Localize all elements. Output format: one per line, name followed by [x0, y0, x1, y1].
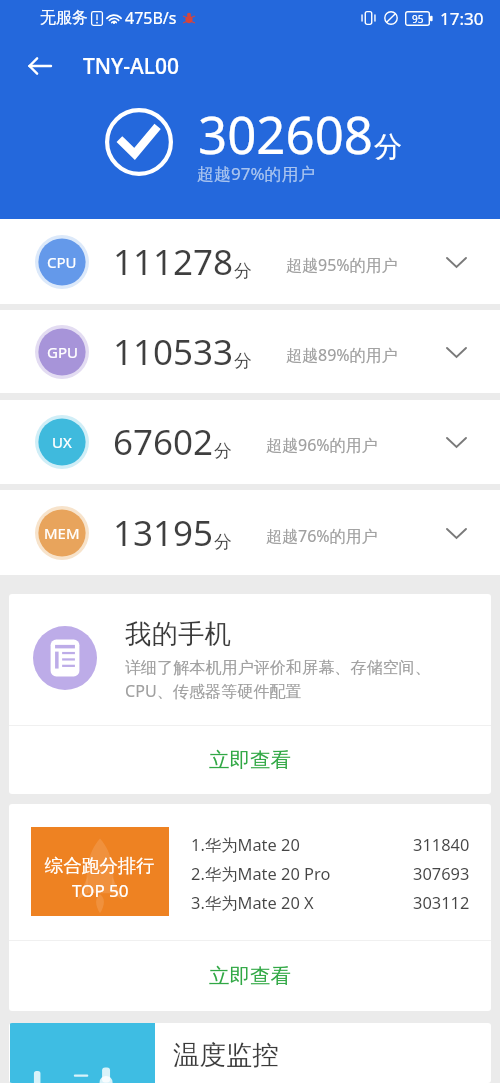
button[interactable]: Expand	[430, 416, 482, 468]
staticText: CPU、传感器等硬件配置	[125, 680, 302, 702]
button[interactable]: 我的手机	[9, 594, 491, 725]
staticText: 分	[214, 531, 232, 554]
staticText: 我的手机	[125, 617, 231, 650]
staticText: 超越96%的用户	[266, 434, 378, 456]
staticText: 分	[374, 129, 402, 164]
staticText: 303112	[413, 891, 470, 913]
staticText: 2.华为Mate 20 Pro	[191, 862, 331, 884]
button[interactable]: Expand	[430, 326, 482, 378]
staticText: TOP 50	[72, 879, 129, 902]
staticText: 分	[214, 440, 232, 463]
staticText: MEM	[44, 523, 80, 543]
staticText: 分	[234, 260, 252, 283]
staticText: UX	[52, 432, 72, 452]
staticText: 超越89%的用户	[286, 344, 398, 366]
staticText: 67602	[113, 418, 214, 466]
staticText: 超越76%的用户	[266, 525, 378, 547]
staticText: TNY-AL00	[83, 52, 180, 81]
staticText: GPU	[47, 342, 78, 362]
button[interactable]: Expand	[430, 236, 482, 288]
staticText: 立即查看	[209, 747, 291, 773]
staticText: 综合跑分排行	[45, 854, 155, 877]
staticText: 无服务	[40, 8, 88, 28]
staticText: 475B/s	[125, 7, 177, 29]
staticText: 110533	[113, 328, 234, 376]
staticText: 1.华为Mate 20	[191, 833, 300, 855]
button[interactable]: 立即查看	[9, 941, 491, 1011]
button[interactable]: CPU	[0, 219, 500, 304]
staticText: 17:30	[440, 7, 484, 30]
staticText: 95	[412, 12, 424, 26]
staticText: 超越95%的用户	[286, 254, 398, 276]
staticText: 立即查看	[209, 963, 291, 989]
button[interactable]: UX	[0, 400, 500, 484]
staticText: 分	[234, 350, 252, 373]
staticText: 温度监控	[173, 1038, 279, 1071]
staticText: 详细了解本机用户评价和屏幕、存储空间、	[125, 657, 431, 677]
staticText: 13195	[113, 509, 214, 557]
staticText: 111278	[113, 238, 234, 286]
staticText: 超越97%的用户	[197, 162, 316, 185]
staticText: 3.华为Mate 20 X	[191, 891, 314, 913]
button[interactable]: 综合跑分排行	[9, 804, 491, 940]
button[interactable]: Back	[18, 44, 62, 88]
button[interactable]: GPU	[0, 310, 500, 393]
staticText: 307693	[413, 862, 470, 884]
button[interactable]: 温度监控	[9, 1023, 491, 1083]
staticText: 302608	[198, 99, 374, 168]
staticText: CPU	[47, 252, 77, 272]
staticText: 311840	[413, 833, 470, 855]
button[interactable]: 立即查看	[9, 726, 491, 794]
button[interactable]: Expand	[430, 507, 482, 559]
button[interactable]: MEM	[0, 490, 500, 575]
